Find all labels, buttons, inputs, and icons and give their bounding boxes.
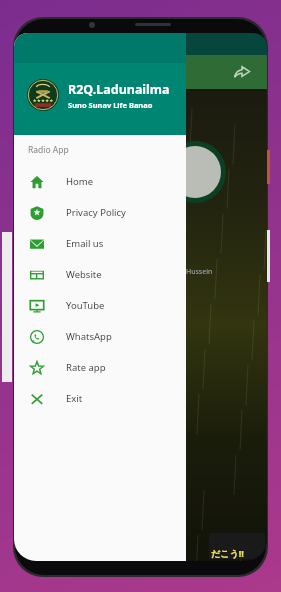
button[interactable]: Privacy Policy [14, 197, 186, 228]
staticText: Radio App [28, 144, 69, 156]
staticText: Home [66, 175, 94, 188]
staticText: Email us [66, 237, 104, 250]
button[interactable]: Home [14, 166, 186, 197]
staticText: Hussein [186, 267, 213, 277]
staticText: Website [66, 268, 102, 281]
staticText: R2Q.Ladunailma [68, 81, 170, 98]
staticText: だこう!! [211, 547, 244, 559]
staticText: YouTube [66, 299, 105, 312]
staticText: Suno Sunav Life Banao [68, 100, 153, 110]
button[interactable]: WhatsApp [14, 321, 186, 352]
staticText: WhatsApp [66, 330, 112, 343]
button[interactable]: Exit [14, 383, 186, 414]
button[interactable]: Email us [14, 228, 186, 259]
button[interactable]: Website [14, 259, 186, 290]
button[interactable]: Rate app [14, 352, 186, 383]
button[interactable]: Share [231, 61, 253, 83]
staticText: Privacy Policy [66, 206, 126, 219]
staticText: Rate app [66, 361, 106, 374]
staticText: Exit [66, 392, 83, 405]
button[interactable]: YouTube [14, 290, 186, 321]
